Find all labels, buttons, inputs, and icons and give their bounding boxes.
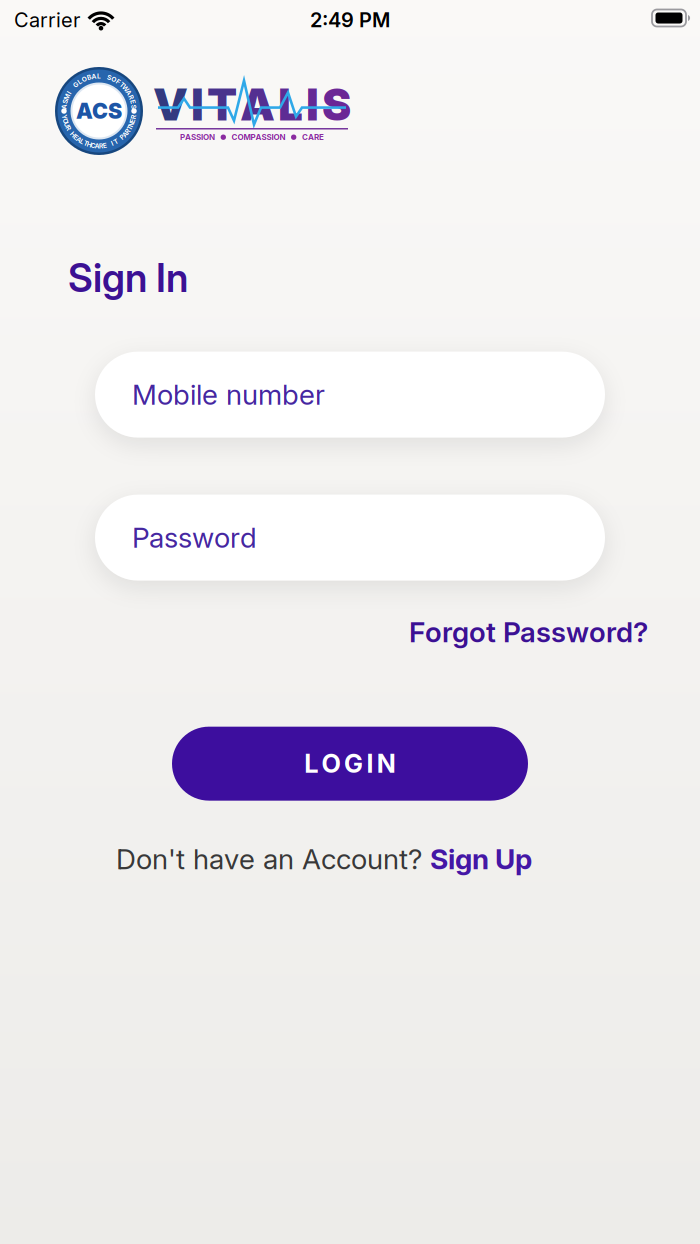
staticText: O — [111, 75, 116, 83]
staticText: Sign Up — [430, 843, 532, 876]
staticText: H — [87, 141, 92, 149]
staticText: G — [344, 749, 363, 779]
staticText: T — [120, 81, 124, 89]
staticText: Password — [132, 521, 257, 554]
staticText: I — [366, 749, 373, 779]
staticText: F — [116, 78, 120, 86]
staticText: R — [66, 124, 70, 132]
staticText: O — [322, 749, 341, 779]
staticText: N — [377, 749, 396, 779]
staticText: S — [132, 103, 136, 111]
staticText: A — [62, 103, 67, 111]
staticText: Sign In — [68, 255, 188, 301]
staticText: T — [128, 124, 132, 132]
staticText: M — [64, 93, 70, 101]
button[interactable]: Forgot Password? — [409, 616, 648, 649]
staticText: E — [131, 117, 135, 125]
staticText: U — [64, 121, 69, 128]
staticText — [118, 136, 120, 144]
staticText: B — [87, 73, 91, 81]
staticText: CARE — [302, 132, 324, 142]
staticText: Forgot Password? — [409, 616, 648, 649]
staticText: O — [82, 75, 87, 83]
staticText: A — [126, 89, 131, 96]
button[interactable]: Password — [95, 495, 605, 581]
staticText: E — [103, 142, 107, 149]
staticText: O — [63, 117, 68, 125]
staticText: 2:49 PM — [310, 8, 390, 32]
staticText: Carrier — [14, 8, 80, 32]
staticText: I — [68, 89, 70, 96]
staticText: S — [107, 73, 111, 81]
staticText: W — [122, 84, 129, 92]
button[interactable]: Mobile number — [95, 352, 605, 438]
staticText: N — [129, 121, 134, 128]
staticText: C — [91, 142, 96, 149]
staticText: A — [240, 79, 275, 130]
staticText: ACS — [76, 98, 122, 124]
staticText: L — [278, 79, 303, 130]
staticText: Y — [62, 113, 67, 121]
button[interactable]: L — [172, 727, 528, 801]
staticText: T — [207, 79, 237, 130]
staticText: L — [78, 78, 82, 86]
staticText: G — [73, 81, 78, 89]
staticText: Mobile number — [132, 378, 325, 411]
staticText: R — [125, 127, 129, 135]
staticText: R — [129, 93, 133, 101]
staticText: E — [74, 133, 78, 141]
staticText: PASSION — [180, 132, 215, 142]
staticText: A — [122, 130, 127, 138]
staticText: L — [80, 138, 84, 146]
staticText: L — [97, 72, 101, 80]
staticText: A — [94, 142, 99, 150]
staticText: A — [91, 72, 96, 80]
staticText: S — [63, 98, 67, 106]
staticText — [69, 127, 71, 135]
staticText: I — [191, 79, 204, 130]
staticText: Don't have an Account? — [116, 843, 422, 876]
staticText: R — [99, 142, 103, 150]
staticText: S — [322, 79, 351, 130]
staticText: I — [111, 139, 113, 147]
staticText: T — [114, 138, 118, 146]
staticText: T — [84, 139, 88, 147]
staticText: V — [153, 79, 188, 130]
staticText: A — [76, 136, 81, 144]
staticText: COMPASSION — [231, 132, 285, 142]
staticText: L — [304, 749, 318, 779]
staticText: P — [120, 133, 124, 141]
staticText: I — [306, 79, 319, 130]
button[interactable]: Sign Up — [430, 843, 532, 876]
staticText: E — [131, 98, 135, 106]
staticText: R — [131, 113, 135, 121]
staticText: H — [70, 130, 75, 138]
